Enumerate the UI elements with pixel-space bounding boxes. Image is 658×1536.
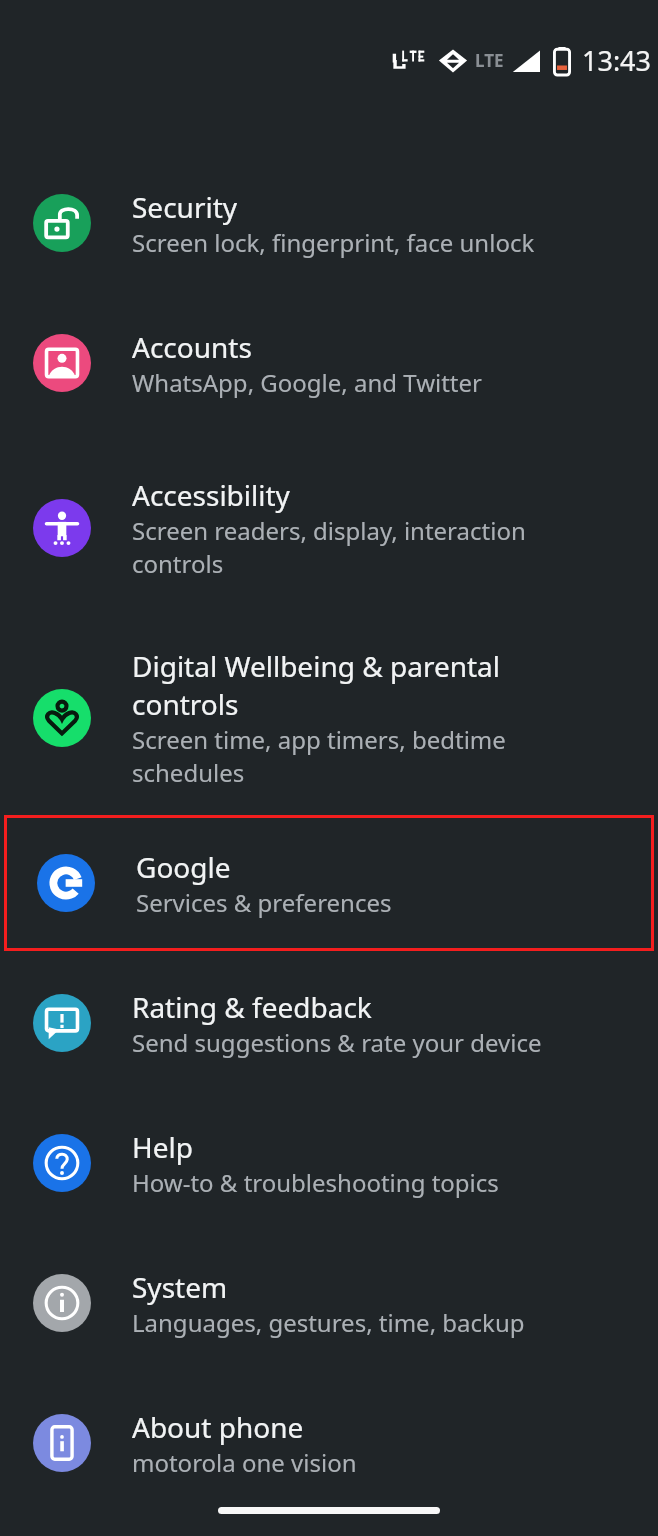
staticText: How-to & troubleshooting topics <box>132 1166 499 1199</box>
staticText: System <box>132 1268 228 1306</box>
staticText: About phone <box>132 1408 304 1446</box>
staticText: Google <box>136 848 231 886</box>
staticText: motorola one vision <box>132 1446 357 1479</box>
staticText: 13:43 <box>582 42 652 79</box>
staticText: Screen readers, display, interaction <box>132 514 526 547</box>
button[interactable]: Rating & feedback <box>0 953 658 1093</box>
button[interactable]: Security <box>0 153 658 293</box>
staticText: Screen time, app timers, bedtime <box>132 723 506 756</box>
staticText: Screen lock, fingerprint, face unlock <box>132 226 535 259</box>
staticText: Languages, gestures, time, backup <box>132 1306 525 1339</box>
staticText: controls <box>132 685 239 723</box>
staticText: Accessibility <box>132 476 290 514</box>
staticText: Services & preferences <box>136 886 392 919</box>
button[interactable]: System <box>0 1233 658 1373</box>
staticText: controls <box>132 547 224 580</box>
button[interactable]: Digital Wellbeing & parental <box>0 623 658 813</box>
staticText: LTE <box>475 49 504 72</box>
staticText: Send suggestions & rate your device <box>132 1026 542 1059</box>
button[interactable]: About phone <box>0 1373 658 1513</box>
staticText: schedules <box>132 756 245 789</box>
button[interactable]: Accessibility <box>0 433 658 623</box>
staticText: Security <box>132 188 238 226</box>
button[interactable]: Accounts <box>0 293 658 433</box>
staticText: Digital Wellbeing & parental <box>132 647 501 685</box>
staticText: Accounts <box>132 328 252 366</box>
button[interactable]: Google <box>4 815 654 951</box>
staticText: WhatsApp, Google, and Twitter <box>132 366 482 399</box>
staticText: Rating & feedback <box>132 988 372 1026</box>
button[interactable]: Help <box>0 1093 658 1233</box>
staticText: Help <box>132 1128 193 1166</box>
